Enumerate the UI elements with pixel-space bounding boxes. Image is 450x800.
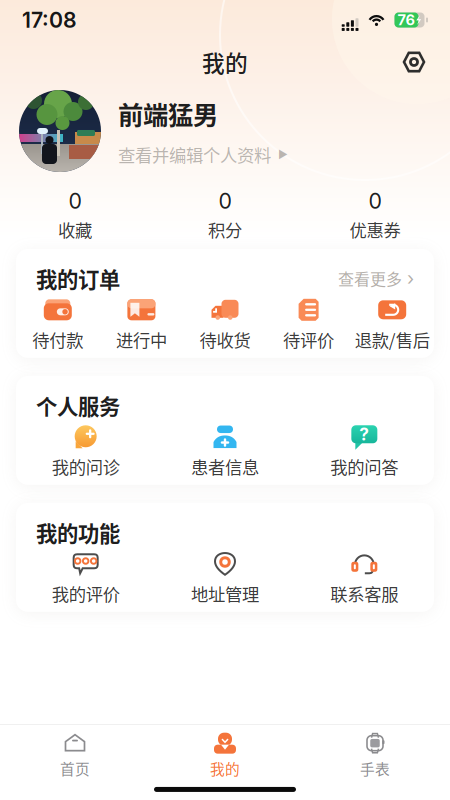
button[interactable]: 退款/售后 (350, 298, 434, 352)
staticText: 待付款 (32, 327, 83, 352)
staticText: 待评价 (283, 327, 334, 352)
staticText: 0 (68, 188, 81, 214)
staticText: 我的 (202, 46, 248, 78)
staticText: 个人服务 (36, 390, 120, 421)
staticText: 0 (368, 188, 381, 214)
staticText: 积分 (208, 217, 242, 242)
staticText: 手表 (360, 758, 390, 779)
button[interactable]: 0 (300, 188, 450, 242)
staticText: › (407, 267, 414, 290)
staticText: 退款/售后 (355, 327, 430, 352)
staticText: 进行中 (116, 327, 167, 352)
button[interactable]: 联系客服 (295, 552, 434, 606)
staticText: 0 (218, 188, 231, 214)
staticText: 我的订单 (36, 263, 120, 294)
button[interactable]: 0 (0, 188, 150, 242)
staticText: ▶ (278, 148, 288, 161)
staticText: 76 (397, 11, 415, 29)
button[interactable]: 待评价 (267, 298, 350, 352)
staticText: 地址管理 (191, 581, 259, 606)
button[interactable]: 患者信息 (155, 425, 295, 479)
staticText: 收藏 (58, 217, 92, 242)
button[interactable]: 我的评价 (16, 552, 155, 606)
button[interactable]: 待收货 (183, 298, 267, 352)
button[interactable]: 我的 (150, 733, 300, 779)
staticText: 我的问诊 (52, 454, 120, 479)
button[interactable]: 进行中 (100, 298, 183, 352)
staticText: 优惠券 (349, 217, 400, 242)
button[interactable]: 设置 (396, 44, 432, 80)
staticText: 首页 (60, 758, 90, 779)
button[interactable]: 查看更多 (338, 267, 414, 290)
staticText: 患者信息 (191, 454, 259, 479)
staticText: 待收货 (199, 327, 250, 352)
staticText: 17:08 (22, 7, 77, 33)
staticText: 查看更多 (338, 267, 402, 290)
staticText: 我的评价 (52, 581, 120, 606)
staticText: 我的问答 (330, 454, 398, 479)
button[interactable]: 地址管理 (155, 552, 295, 606)
button[interactable]: 我的问诊 (16, 425, 155, 479)
staticText: 前端猛男 (118, 95, 218, 132)
staticText: ? (359, 424, 369, 445)
staticText: 我的 (210, 758, 240, 779)
button[interactable]: 前端猛男 (0, 90, 450, 172)
button[interactable]: 手表 (300, 733, 450, 779)
button[interactable]: 待付款 (16, 298, 100, 352)
staticText: 联系客服 (330, 581, 398, 606)
staticText: 查看并编辑个人资料 (118, 142, 271, 167)
button[interactable]: ? (295, 425, 434, 479)
button[interactable]: 首页 (0, 733, 150, 779)
button[interactable]: 0 (150, 188, 300, 242)
staticText: 我的功能 (36, 517, 120, 548)
